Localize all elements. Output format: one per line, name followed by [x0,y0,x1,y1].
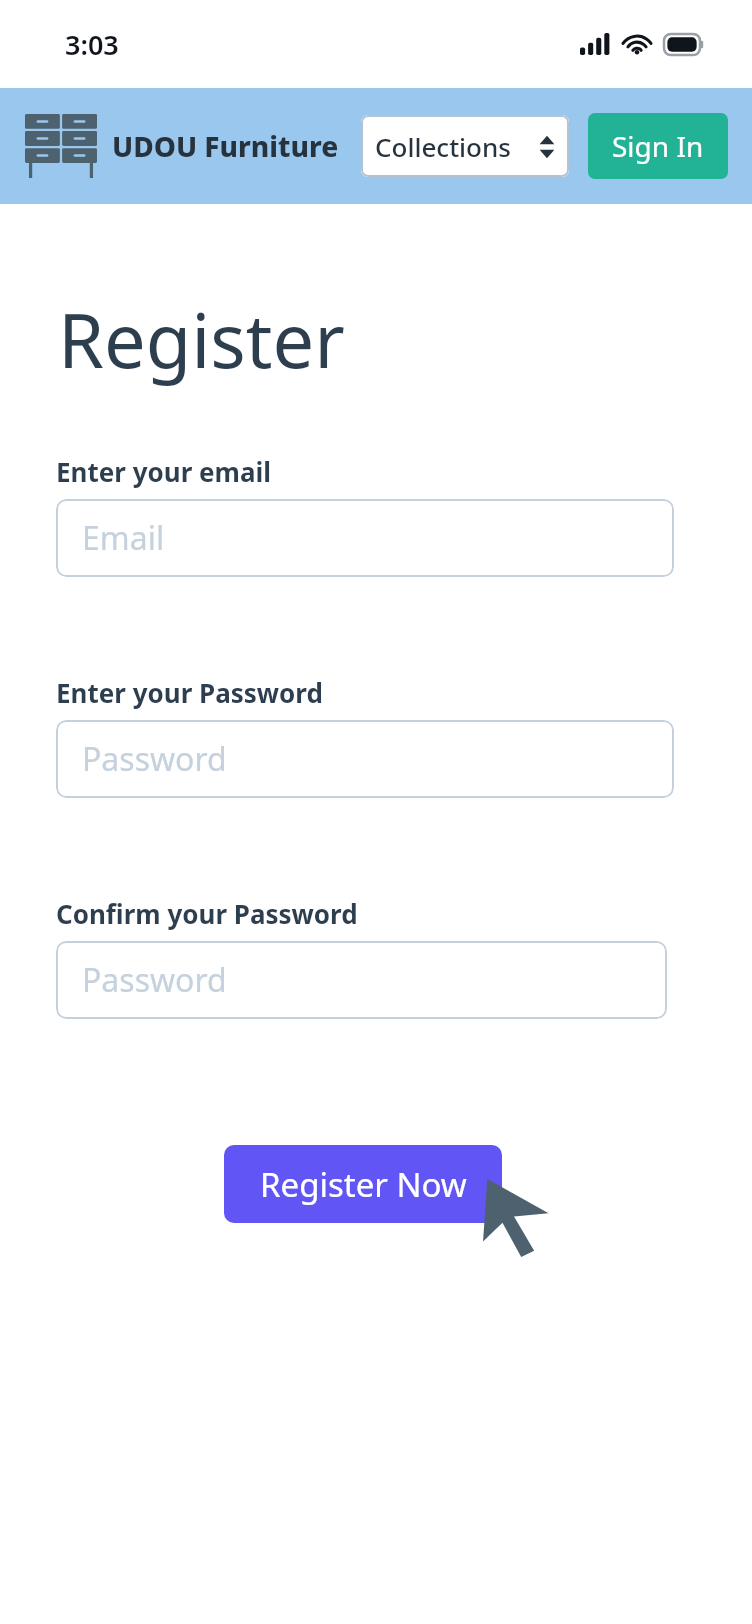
button[interactable]: Password [56,720,674,798]
staticText: 3:03 [65,26,119,63]
button[interactable]: Email [56,499,674,577]
staticText: Register Now [260,1162,467,1207]
staticText: Email [82,516,165,560]
button[interactable]: Collections [361,115,569,177]
button[interactable]: Password [56,941,667,1019]
staticText: UDOU Furniture [112,127,339,165]
staticText: Password [82,958,227,1002]
staticText: Register [58,289,345,390]
staticText: Enter your email [56,454,271,489]
staticText: Password [82,737,227,781]
button[interactable]: Register Now [224,1145,502,1223]
button[interactable]: Sign In [588,113,728,179]
staticText: Enter your Password [56,675,323,710]
staticText: Confirm your Password [56,896,358,931]
staticText: Collections [375,129,511,164]
staticText: Sign In [612,127,704,165]
